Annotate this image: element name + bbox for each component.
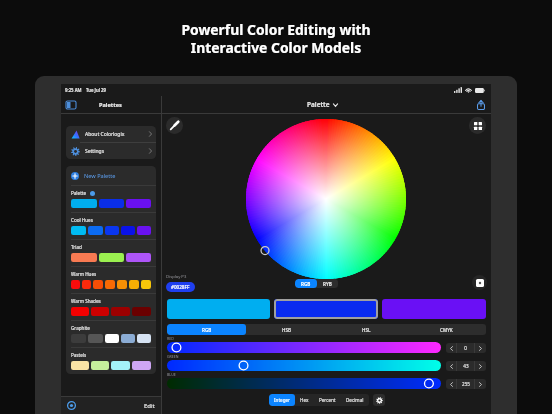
staticText: Powerful Color Editing with Interactive …	[0, 20, 552, 57]
staticText: RGB	[301, 281, 311, 287]
button[interactable]: Palette	[307, 100, 338, 109]
button[interactable]: RGB	[295, 279, 317, 288]
staticText: Graphite	[71, 325, 90, 331]
button[interactable]: RYB	[317, 279, 338, 288]
button[interactable]: Pastels	[66, 348, 156, 374]
staticText: HSL	[362, 327, 371, 333]
button[interactable]: Decrease GREEN	[446, 361, 456, 371]
staticText: 43	[463, 363, 469, 369]
button[interactable]: Cool Hues	[66, 213, 156, 239]
staticText: Palette	[307, 100, 330, 109]
staticText: RYB	[323, 281, 332, 287]
button[interactable]: Increase GREEN	[475, 361, 486, 371]
button[interactable]	[382, 299, 486, 319]
staticText: Palette	[71, 190, 87, 196]
staticText: Palettes	[99, 101, 122, 109]
button[interactable]: New Palette	[66, 166, 156, 185]
staticText: Display P3	[166, 274, 187, 280]
button[interactable]: Graphite	[66, 321, 156, 347]
staticText: BLUE	[167, 372, 176, 377]
staticText: Pastels	[71, 352, 87, 358]
button[interactable]: HSL	[326, 324, 406, 335]
button[interactable]	[274, 299, 378, 319]
button[interactable]: Increase BLUE	[475, 379, 486, 389]
staticText: Edit	[144, 402, 155, 410]
staticText: Settings	[85, 148, 105, 155]
staticText: 0	[464, 345, 467, 351]
button[interactable]: Edit	[144, 402, 155, 410]
staticText: 9:25 AM	[65, 87, 82, 93]
button[interactable]: Palette	[66, 186, 156, 212]
button[interactable]: Warm Shades	[66, 294, 156, 320]
staticText: RGB	[202, 327, 212, 333]
button[interactable]: Grid view	[469, 117, 486, 134]
button[interactable]: Hex	[295, 394, 314, 406]
staticText: GREEN	[167, 354, 179, 359]
button[interactable]: Increase RED	[475, 343, 486, 353]
button[interactable]: Toggle sidebar	[66, 101, 76, 109]
staticText: Percent	[319, 397, 336, 403]
button[interactable]: CMYK	[406, 324, 486, 335]
staticText: Tue Jul 29	[86, 87, 106, 93]
button[interactable]: Color picker	[67, 401, 76, 410]
button[interactable]: Share	[477, 100, 485, 110]
button[interactable]: Settings	[373, 394, 385, 406]
staticText: Warm Hues	[71, 271, 97, 277]
staticText: Warm Shades	[71, 298, 101, 304]
button[interactable]: #0028FF	[166, 282, 195, 292]
staticText: New Palette	[84, 172, 116, 180]
staticText: 255	[462, 381, 470, 387]
button[interactable]: Settings	[66, 143, 156, 159]
button[interactable]: About Colorlogix	[66, 126, 156, 142]
staticText: Hex	[300, 397, 309, 403]
button[interactable]: HSB	[246, 324, 326, 335]
staticText: Triad	[71, 244, 82, 250]
staticText: Integer	[274, 397, 290, 403]
staticText: About Colorlogix	[85, 131, 125, 138]
button[interactable]	[167, 299, 270, 319]
staticText: HSB	[282, 327, 291, 333]
button[interactable]	[167, 360, 441, 371]
staticText: #0028FF	[171, 284, 190, 290]
button[interactable]: Warm Hues	[66, 267, 156, 293]
staticText: Cool Hues	[71, 217, 93, 223]
button[interactable]: Add swatch	[472, 275, 487, 290]
button[interactable]: Decrease BLUE	[446, 379, 456, 389]
button[interactable]: Decimal	[341, 394, 369, 406]
button[interactable]: Triad	[66, 240, 156, 266]
button[interactable]	[167, 378, 441, 389]
staticText: CMYK	[440, 327, 453, 333]
button[interactable]	[167, 342, 441, 353]
button[interactable]: Eyedropper	[166, 117, 183, 134]
button[interactable]: RGB	[167, 324, 246, 335]
button[interactable]: Decrease RED	[446, 343, 456, 353]
button[interactable]: Percent	[314, 394, 341, 406]
staticText: Decimal	[346, 397, 364, 403]
staticText: RED	[167, 336, 174, 341]
button[interactable]: Integer	[269, 394, 295, 406]
